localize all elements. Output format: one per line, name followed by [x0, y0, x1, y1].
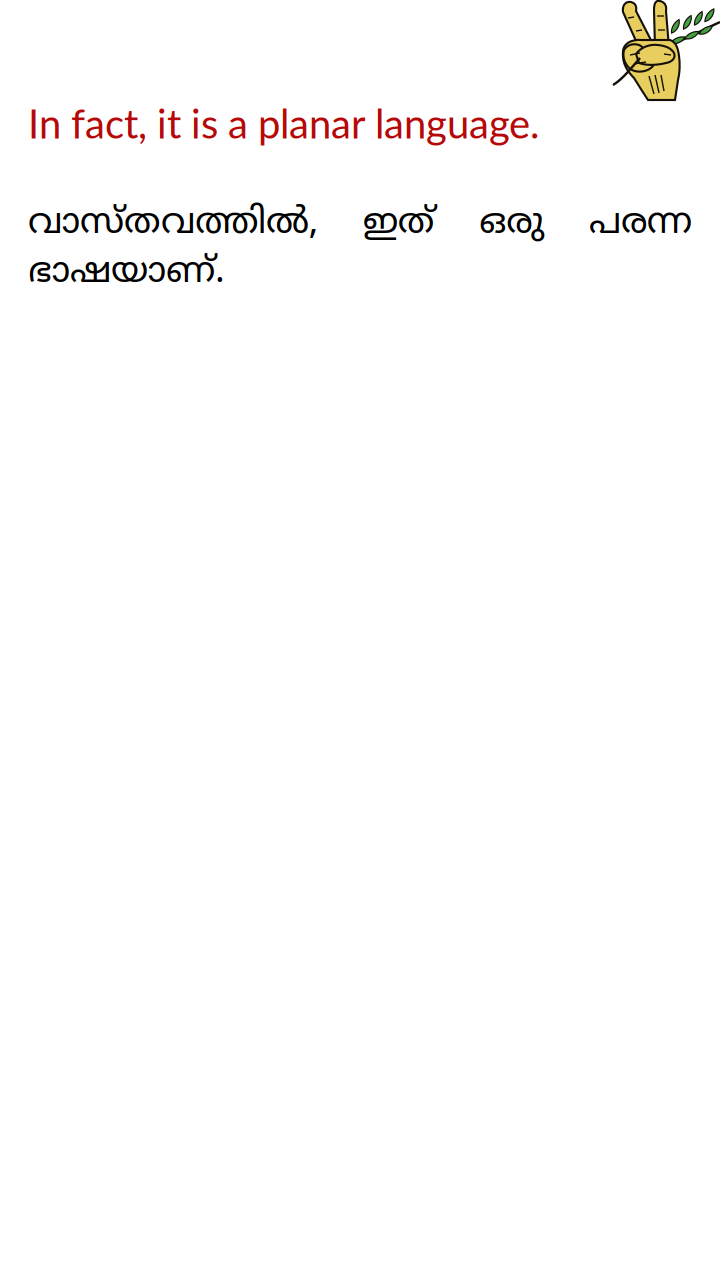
staticText: പരന്ന	[589, 202, 692, 247]
staticText: വാസ്തവത്തിൽ,	[28, 202, 318, 247]
staticText: ഇത്	[363, 202, 435, 247]
staticText: ഒരു	[479, 202, 544, 247]
staticText: ഭാഷയാണ്.	[28, 251, 225, 296]
staticText: In fact, it is a planar language.	[28, 99, 539, 147]
